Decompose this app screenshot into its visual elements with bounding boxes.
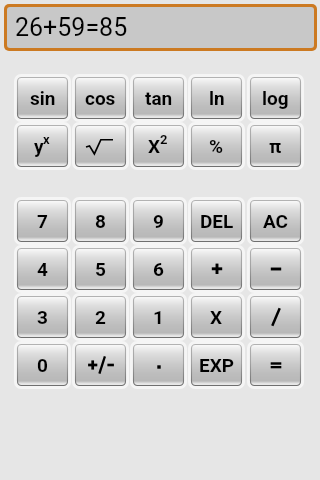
button[interactable]: plus or minus (73, 342, 128, 388)
button[interactable]: X (189, 294, 244, 340)
button[interactable]: ln (189, 75, 244, 121)
staticText: % (209, 135, 224, 157)
staticText: 5 (95, 258, 106, 280)
staticText: X (148, 135, 161, 157)
button[interactable]: 1 (131, 294, 186, 340)
button[interactable]: X (131, 123, 186, 169)
button[interactable]: 5 (73, 246, 128, 292)
button[interactable]: cos (73, 75, 128, 121)
staticText: tan (145, 87, 173, 109)
button[interactable]: 8 (73, 198, 128, 244)
staticText: 1 (153, 306, 164, 328)
button[interactable]: minus (248, 246, 303, 292)
staticText: 2 (95, 306, 106, 328)
button[interactable]: 0 (15, 342, 70, 388)
button[interactable]: 7 (15, 198, 70, 244)
staticText: EXP (199, 354, 234, 376)
button[interactable]: EXP (189, 342, 244, 388)
staticText: 6 (153, 258, 164, 280)
button[interactable]: y (15, 123, 70, 169)
staticText: cos (85, 87, 116, 109)
staticText: sin (30, 87, 56, 109)
staticText: 7 (37, 210, 48, 232)
button[interactable]: DEL (189, 198, 244, 244)
staticText: X (210, 306, 223, 328)
staticText: y (34, 135, 44, 157)
button[interactable]: divide (248, 294, 303, 340)
button[interactable]: 2 (73, 294, 128, 340)
button[interactable]: plus (189, 246, 244, 292)
staticText: 3 (37, 306, 48, 328)
staticText: 4 (37, 258, 48, 280)
staticText: 9 (153, 210, 164, 232)
staticText: x (43, 132, 50, 147)
button[interactable]: 4 (15, 246, 70, 292)
button[interactable]: π (248, 123, 303, 169)
button[interactable]: AC (248, 198, 303, 244)
button[interactable]: equals (248, 342, 303, 388)
button[interactable]: log (248, 75, 303, 121)
staticText: 26+59=85 (15, 13, 128, 42)
button[interactable]: sin (15, 75, 70, 121)
staticText: π (269, 135, 282, 157)
staticText: ln (209, 87, 225, 109)
button[interactable]: tan (131, 75, 186, 121)
staticText: log (262, 87, 289, 109)
staticText: 8 (95, 210, 106, 232)
staticText: AC (263, 210, 289, 232)
staticText: 2 (160, 132, 168, 147)
staticText: DEL (200, 210, 234, 232)
button[interactable]: 3 (15, 294, 70, 340)
button[interactable]: square root (73, 123, 128, 169)
staticText: 0 (37, 354, 48, 376)
button[interactable]: decimal point (131, 342, 186, 388)
button[interactable]: 26+59=85 (7, 7, 314, 48)
button[interactable]: 6 (131, 246, 186, 292)
button[interactable]: % (189, 123, 244, 169)
button[interactable]: 9 (131, 198, 186, 244)
